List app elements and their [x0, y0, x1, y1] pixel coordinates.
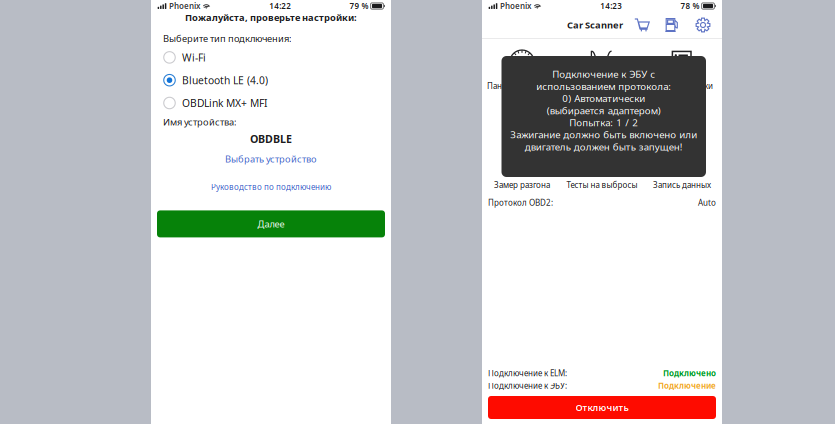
button[interactable]: Ошибки: [482, 93, 562, 143]
button[interactable]: Settings: [695, 17, 711, 33]
staticText: Bluetooth LE (4.0): [182, 73, 268, 87]
staticText: двигатель должен быть запущен!: [525, 140, 683, 153]
staticText: Auto: [698, 197, 716, 208]
staticText: OBDLink MX+ MFI: [182, 96, 267, 110]
staticText: Phoenix: [498, 1, 531, 11]
staticText: Инфо ЭБУ: [662, 130, 701, 141]
staticText: 14:22: [269, 1, 291, 11]
button[interactable]: Другие датчики: [642, 44, 722, 93]
staticText: Подключение к ЭБУ:: [488, 380, 567, 391]
staticText: Спец. функции: [573, 130, 630, 141]
staticText: 0) Автоматически: [562, 92, 645, 105]
staticText: Подключение к ЭБУ с: [552, 67, 655, 81]
staticText: Выберите тип подключения:: [163, 32, 292, 45]
button[interactable]: Графики: [562, 44, 642, 93]
staticText: Руководство по подключению: [211, 182, 331, 192]
staticText: OBDBLE: [250, 132, 292, 146]
staticText: Зажигание должно быть включено или: [510, 128, 697, 141]
button[interactable]: Спец. функции: [562, 93, 642, 143]
staticText: Wi-Fi: [182, 50, 206, 64]
staticText: Подключение: [658, 380, 716, 391]
staticText: Подключение к ELM:: [488, 368, 567, 378]
button[interactable]: OBDLink MX+ MFI: [163, 92, 391, 114]
staticText: Далее: [257, 218, 284, 230]
button[interactable]: Тесты на выбросы: [562, 143, 642, 192]
staticText: Car Scanner: [567, 19, 623, 31]
staticText: Имя устройства:: [163, 116, 237, 128]
staticText: Панель приборов: [487, 80, 557, 91]
staticText: Ошибки: [506, 130, 538, 141]
staticText: Протокол OBD2:: [488, 197, 553, 208]
staticText: Phoenix: [167, 1, 200, 11]
button[interactable]: Shop: [634, 17, 650, 33]
staticText: 78 %: [681, 1, 700, 11]
staticText: Подключено: [663, 368, 716, 378]
button[interactable]: Руководство по подключению: [151, 180, 391, 193]
staticText: (выбирается адаптером): [547, 104, 661, 117]
button[interactable]: Далее: [157, 210, 385, 237]
staticText: Графики: [585, 80, 618, 91]
staticText: 14:23: [600, 1, 622, 11]
staticText: Запись данных: [653, 179, 711, 190]
button[interactable]: Bluetooth LE (4.0): [163, 69, 391, 92]
button[interactable]: REC: [642, 143, 722, 192]
staticText: Тесты на выбросы: [566, 179, 637, 190]
staticText: Попытка: 1 / 2: [569, 116, 638, 129]
staticText: Отключить: [575, 401, 628, 414]
staticText: Другие датчики: [651, 80, 713, 91]
button[interactable]: Fuel log: [665, 17, 679, 33]
button[interactable]: Замер разгона: [482, 143, 562, 192]
button[interactable]: Wi-Fi: [163, 46, 391, 69]
staticText: Замер разгона: [494, 179, 550, 190]
staticText: Пожалуйста, проверьте настройки:: [185, 11, 357, 24]
staticText: 79 %: [350, 1, 369, 11]
staticText: использованием протокола:: [536, 79, 671, 93]
staticText: Выбрать устройство: [225, 153, 317, 165]
button[interactable]: Выбрать устройство: [151, 152, 391, 165]
button[interactable]: Отключить: [488, 396, 716, 419]
button[interactable]: Инфо ЭБУ: [642, 93, 722, 143]
button[interactable]: Панель приборов: [482, 44, 562, 93]
